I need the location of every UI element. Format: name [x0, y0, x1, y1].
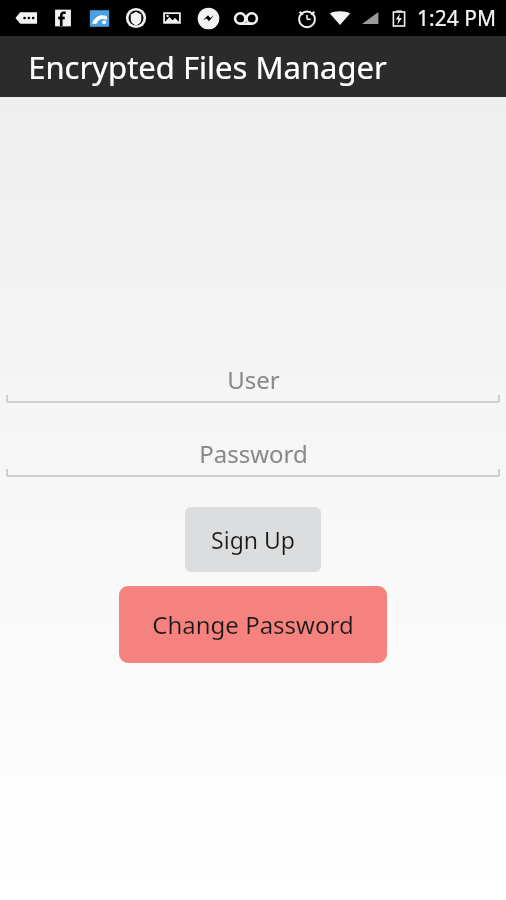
staticText: Change Password [152, 608, 354, 641]
staticText: 1:24 PM [417, 4, 496, 33]
staticText: Sign Up [211, 524, 295, 555]
button[interactable]: User [0, 359, 506, 406]
staticText: Password [199, 437, 308, 470]
button[interactable]: Change Password [119, 586, 387, 663]
staticText: Encrypted Files Manager [28, 46, 387, 88]
staticText: User [227, 363, 280, 396]
button[interactable]: Password [0, 433, 506, 480]
button[interactable]: Sign Up [185, 507, 321, 572]
